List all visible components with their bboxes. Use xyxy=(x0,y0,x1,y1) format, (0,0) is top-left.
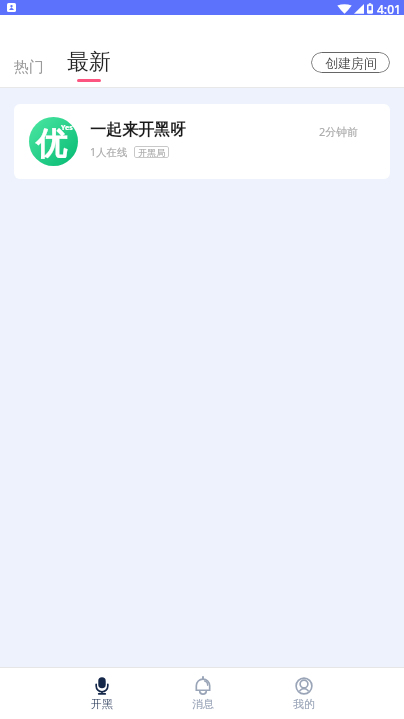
staticText: 消息 xyxy=(192,697,214,711)
staticText: 一起来开黑呀 xyxy=(90,120,186,140)
staticText: Yes xyxy=(61,123,73,133)
button[interactable]: 消息 xyxy=(152,667,253,719)
button[interactable]: 最新 xyxy=(63,46,115,84)
staticText: 开黑 xyxy=(91,697,113,711)
staticText: 4:01 xyxy=(377,1,401,16)
button[interactable]: 优 xyxy=(14,104,390,179)
staticText: 开黑局 xyxy=(138,147,165,158)
staticText: 热门 xyxy=(14,58,44,77)
button[interactable]: 热门 xyxy=(8,54,50,81)
staticText: 创建房间 xyxy=(325,55,377,71)
staticText: 2分钟前 xyxy=(319,124,359,139)
button[interactable]: 创建房间 xyxy=(311,52,390,73)
staticText: 我的 xyxy=(293,697,315,711)
button[interactable]: 开黑 xyxy=(51,667,152,719)
staticText: 优 xyxy=(36,124,67,163)
staticText: 1人在线 xyxy=(90,145,128,159)
staticText: 最新 xyxy=(67,48,111,76)
button[interactable]: 我的 xyxy=(253,667,354,719)
